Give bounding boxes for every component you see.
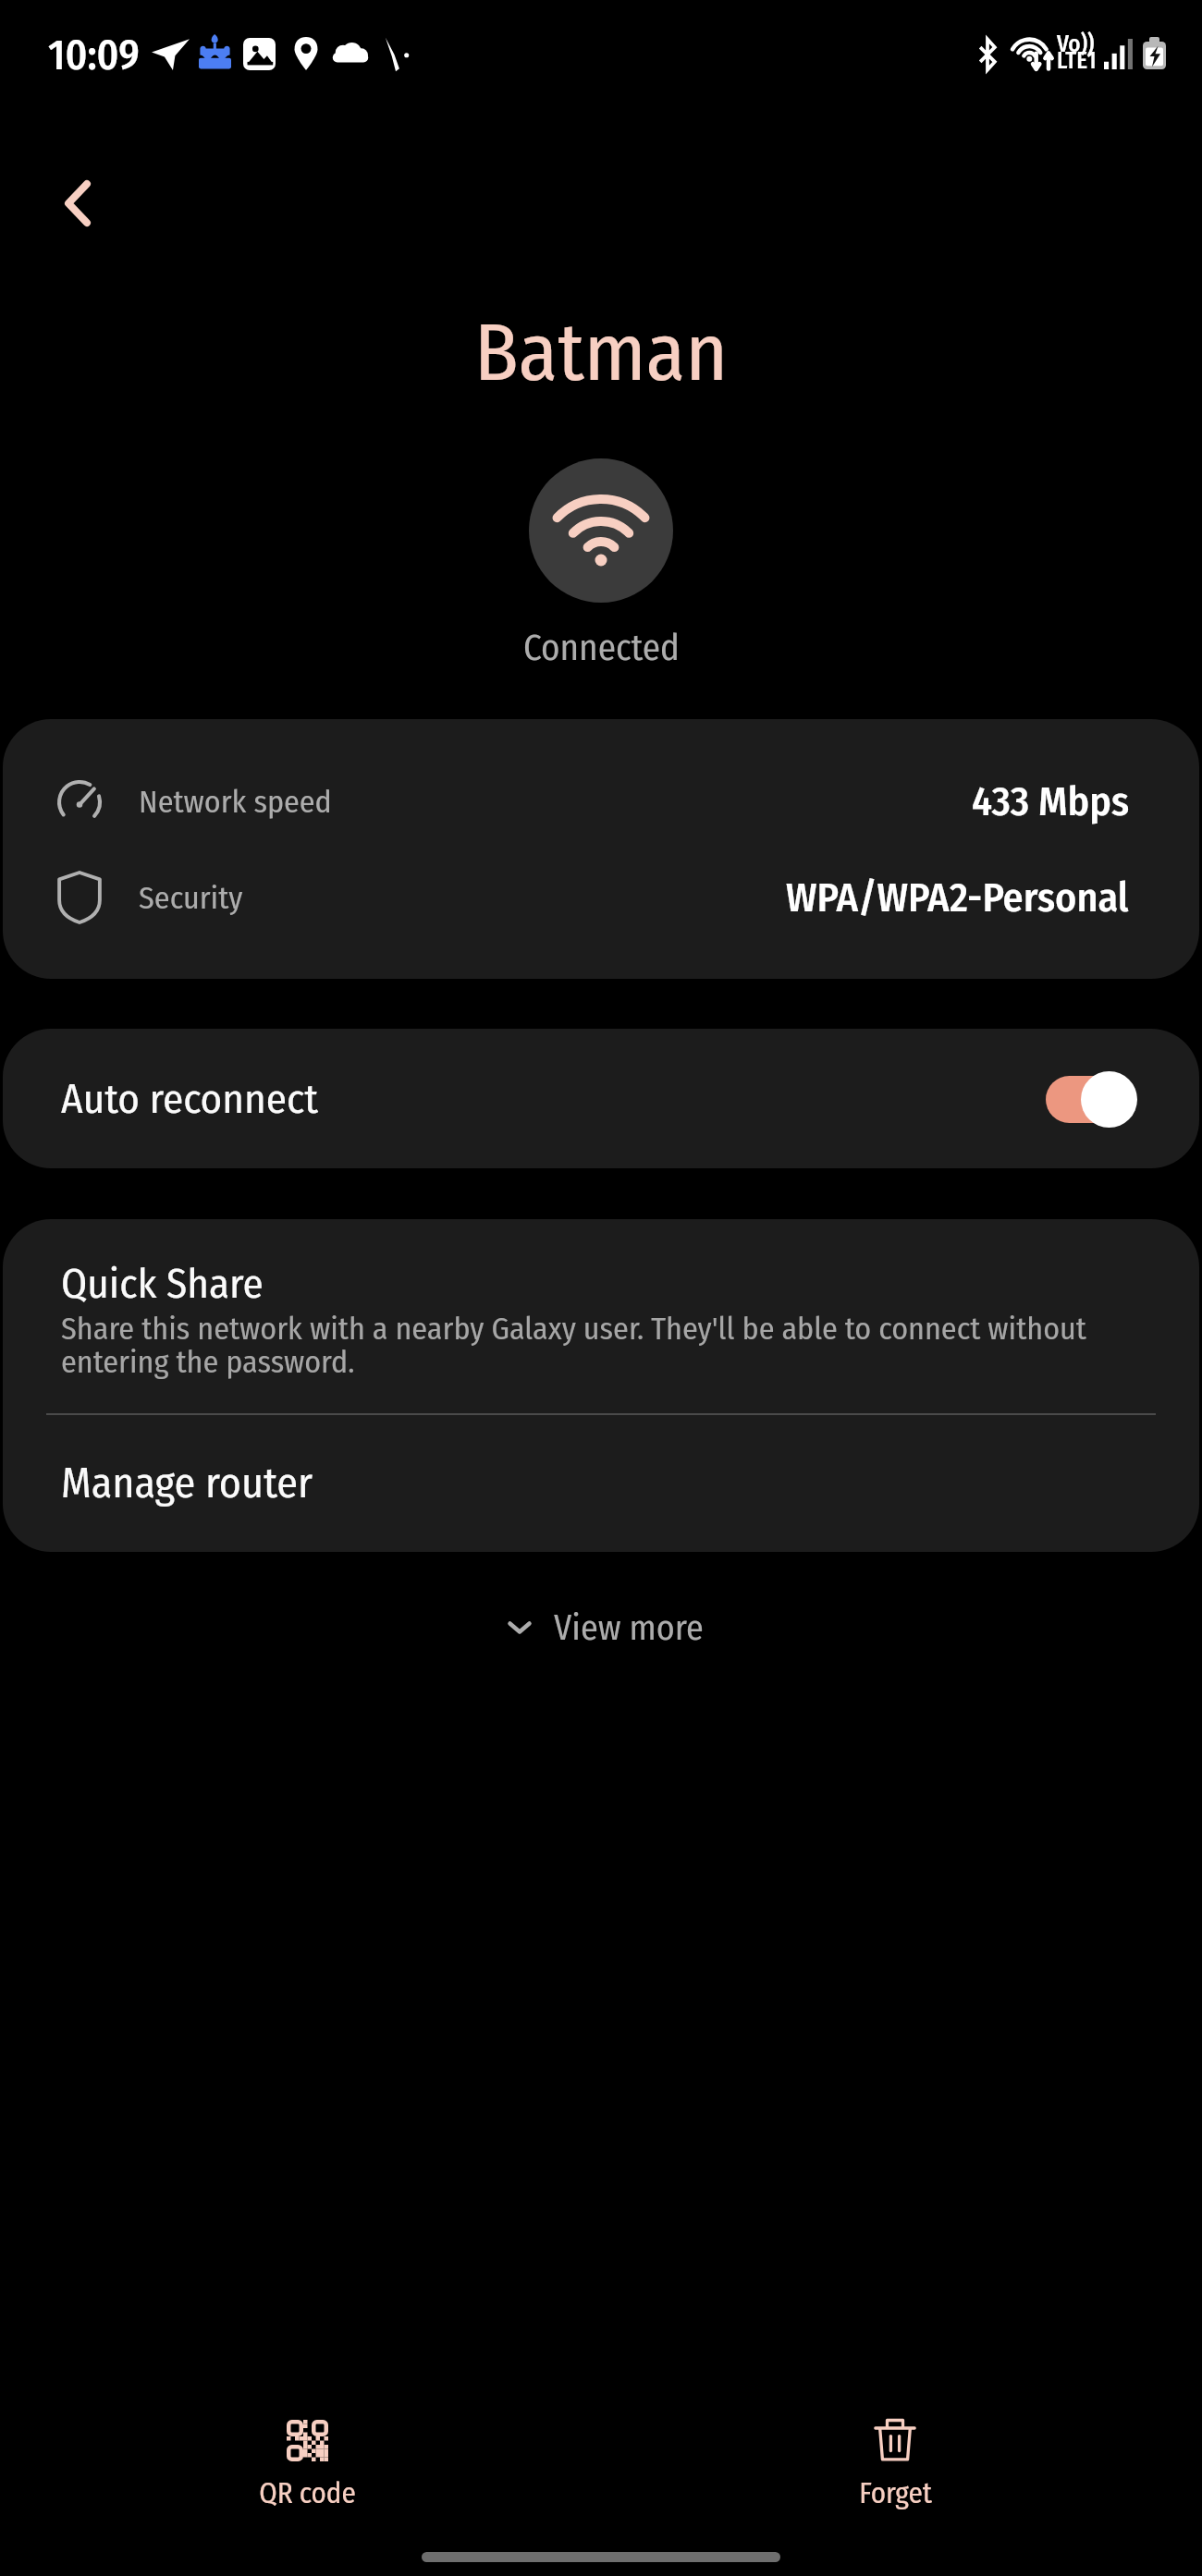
staticText: Network speed (139, 783, 332, 821)
button[interactable]: Auto reconnect (3, 1029, 1199, 1168)
staticText: Manage router (61, 1458, 313, 1508)
button[interactable]: View more (489, 1592, 722, 1664)
staticText: Quick Share (61, 1259, 264, 1309)
staticText: Batman (474, 305, 729, 401)
staticText: Vo)) (1057, 31, 1095, 58)
button[interactable]: Quick Share (3, 1219, 1199, 1412)
button[interactable]: Forget (775, 2390, 1015, 2529)
staticText: QR code (259, 2476, 356, 2510)
staticText: Auto reconnect (61, 1074, 318, 1124)
staticText: 10:09 (48, 31, 140, 80)
staticText: View more (554, 1606, 704, 1649)
button[interactable]: QR code (187, 2390, 427, 2529)
staticText: Forget (859, 2476, 932, 2510)
staticText: WPA/WPA2-Personal (786, 873, 1129, 922)
button[interactable]: Auto reconnect, on (1046, 1070, 1137, 1128)
staticText: 433 Mbps (972, 777, 1129, 826)
button[interactable]: Manage router (3, 1413, 1199, 1552)
staticText: Connected (523, 627, 680, 670)
staticText: Share this network with a nearby Galaxy … (61, 1310, 1147, 1381)
staticText: Security (139, 879, 243, 917)
button[interactable]: Navigate up (22, 148, 133, 259)
staticText: LTE1 (1057, 47, 1097, 75)
